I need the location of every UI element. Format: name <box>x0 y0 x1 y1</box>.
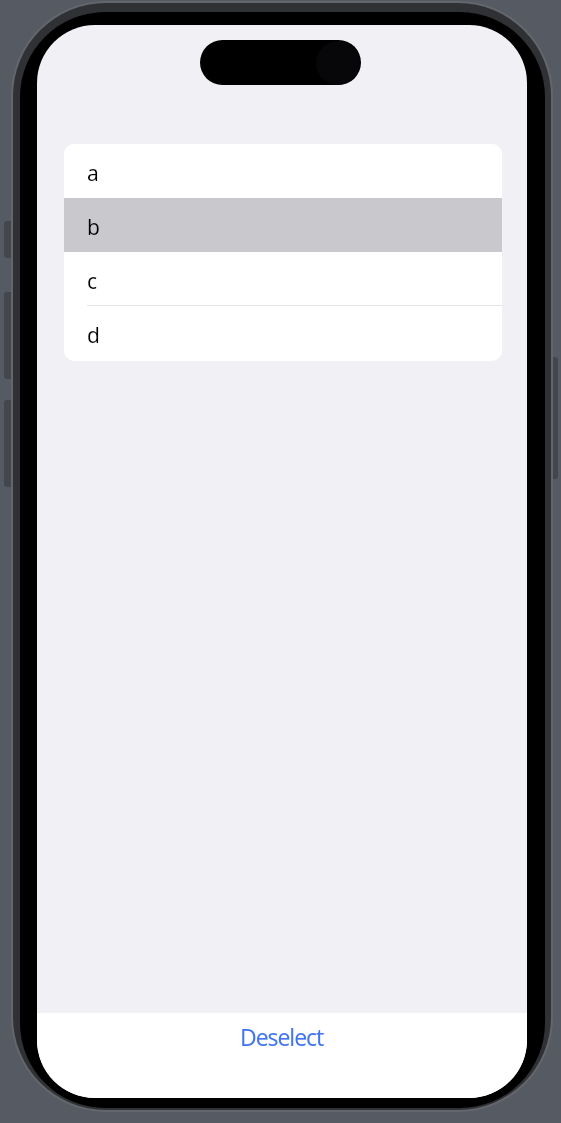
button[interactable]: a <box>64 144 502 198</box>
staticText: Deselect <box>240 1021 324 1052</box>
button[interactable]: d <box>64 306 502 360</box>
button[interactable]: Deselect <box>240 1021 324 1052</box>
button[interactable]: b <box>64 198 502 252</box>
staticText: d <box>87 321 100 350</box>
staticText: a <box>87 159 99 188</box>
staticText: b <box>87 213 100 242</box>
button[interactable]: c <box>64 252 502 306</box>
staticText: c <box>87 267 98 296</box>
